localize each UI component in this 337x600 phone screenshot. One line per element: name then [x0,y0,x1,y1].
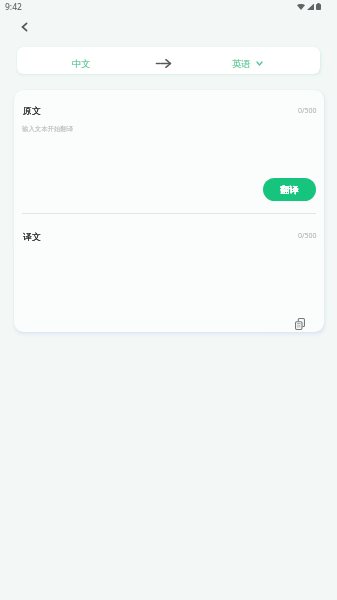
staticText: 译文 [23,231,41,242]
button[interactable]: 中文 [17,47,146,74]
button[interactable]: Swap languages [146,47,180,74]
staticText: 0/500 [298,106,317,116]
staticText: 9:42 [5,1,22,13]
staticText: 译文 [23,231,41,242]
button[interactable]: 翻译 [263,178,316,201]
button[interactable]: Copy [290,314,309,332]
staticText: 输入文本开始翻译 [22,125,74,133]
staticText: 0/500 [298,231,317,241]
staticText: 翻译 [280,184,299,196]
button[interactable]: Back [12,15,36,39]
staticText: 原文 [23,105,41,116]
staticText: 译文 [23,231,41,242]
staticText: 中文 [72,58,91,70]
staticText: 原文 [23,105,41,116]
staticText: 原文 [23,105,41,116]
button[interactable]: 英语 [177,47,317,74]
staticText: 翻译 [280,184,299,196]
staticText: 翻译 [280,184,299,196]
staticText: 英语 [232,58,251,70]
